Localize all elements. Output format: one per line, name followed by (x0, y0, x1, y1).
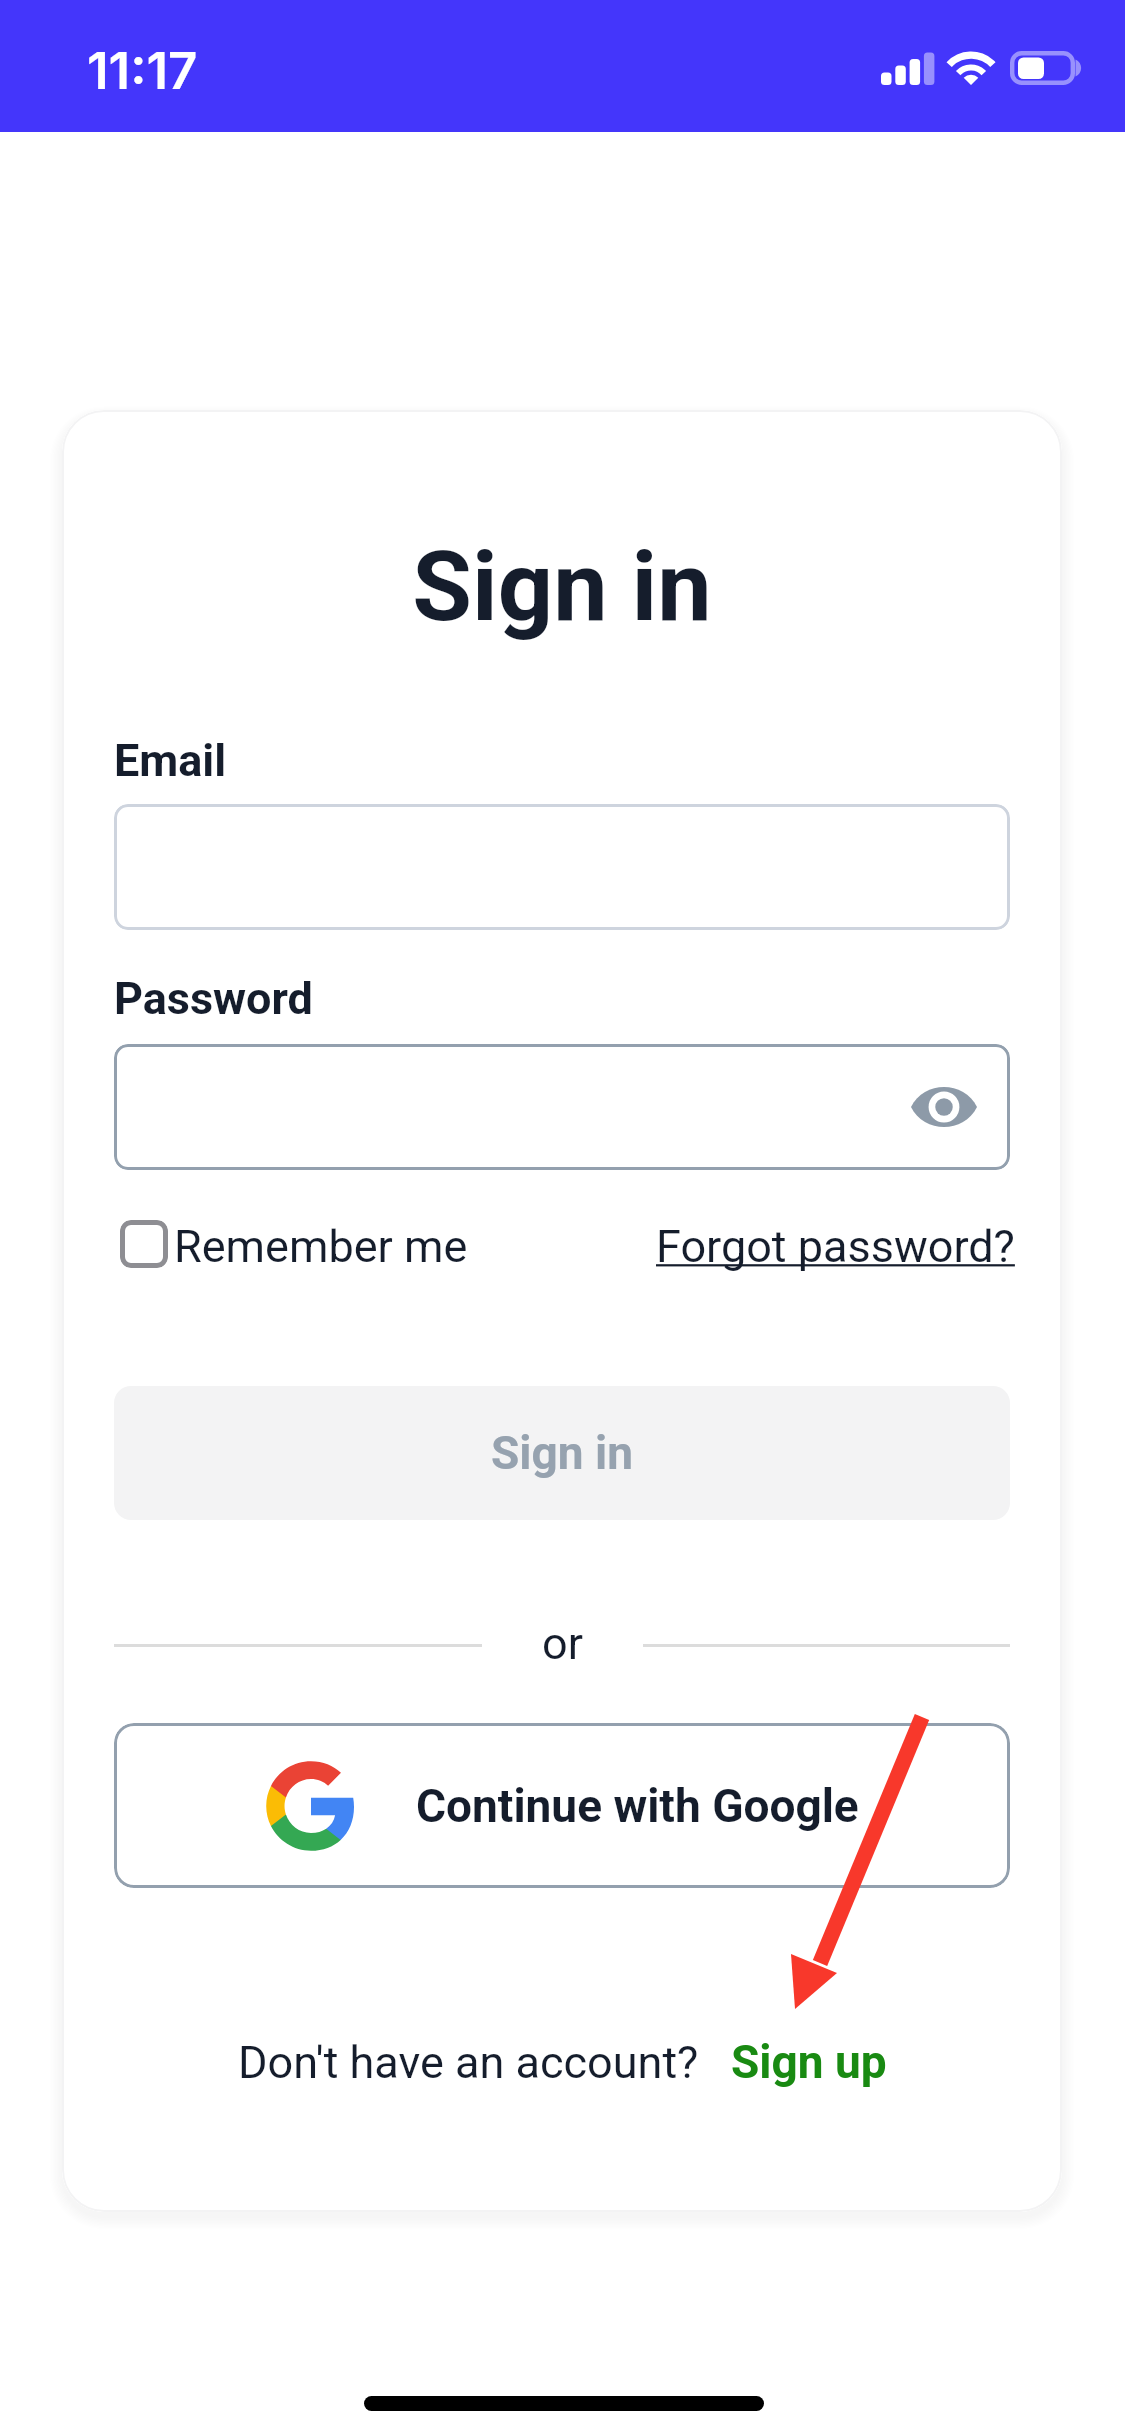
staticText: Don't have an account? (238, 2036, 699, 2089)
staticText: Sign in (62, 530, 1062, 644)
staticText: Sign in (491, 1426, 633, 1480)
button[interactable]: Forgot password? (656, 1220, 1015, 1273)
button[interactable] (114, 804, 1010, 930)
button[interactable]: Sign up (731, 2035, 887, 2089)
staticText: 11:17 (87, 40, 198, 102)
staticText: Password (114, 972, 313, 1025)
staticText: Forgot password? (656, 1220, 1015, 1273)
staticText: or (500, 1617, 625, 1670)
staticText: Email (114, 734, 227, 787)
button[interactable]: Show password (114, 1044, 1010, 1170)
button[interactable]: Sign in (114, 1386, 1010, 1520)
button[interactable]: Remember me checkbox (120, 1220, 468, 1268)
staticText: Continue with Google (416, 1779, 859, 1833)
staticText: Remember me (174, 1220, 468, 1268)
button[interactable]: Show password (906, 1069, 982, 1145)
staticText: Sign up (731, 2035, 887, 2089)
button[interactable]: Continue with Google (114, 1723, 1010, 1888)
